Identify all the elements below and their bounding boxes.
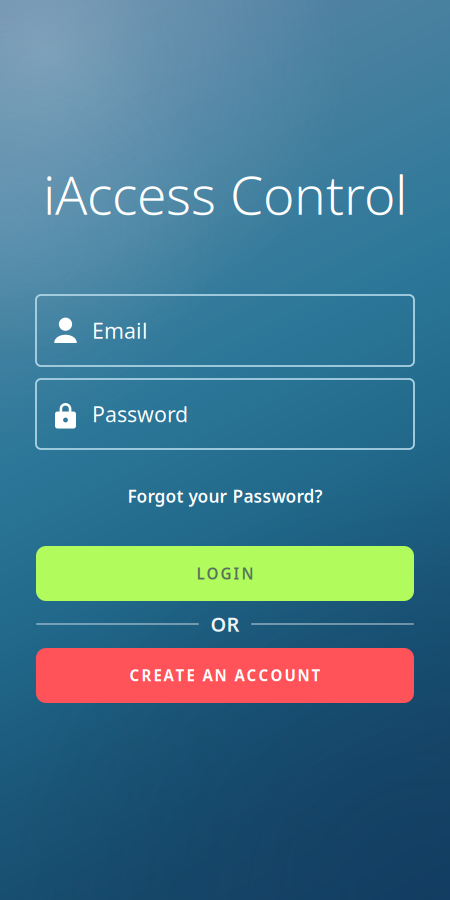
staticText: C R E A T E A N A C C O U N T [129,665,320,686]
button[interactable]: Forgot your Password? [0,479,450,513]
staticText: Password [92,400,188,428]
staticText: L O G I N [196,563,253,584]
staticText: Forgot your Password? [127,484,322,507]
button[interactable]: Email [36,295,414,366]
button[interactable]: C R E A T E A N A C C O U N T [36,648,414,703]
staticText: Email [92,316,148,345]
button[interactable]: Password [36,379,414,449]
button[interactable]: L O G I N [36,546,414,601]
staticText: OR [210,611,239,637]
staticText: iAccess Control [43,159,407,229]
